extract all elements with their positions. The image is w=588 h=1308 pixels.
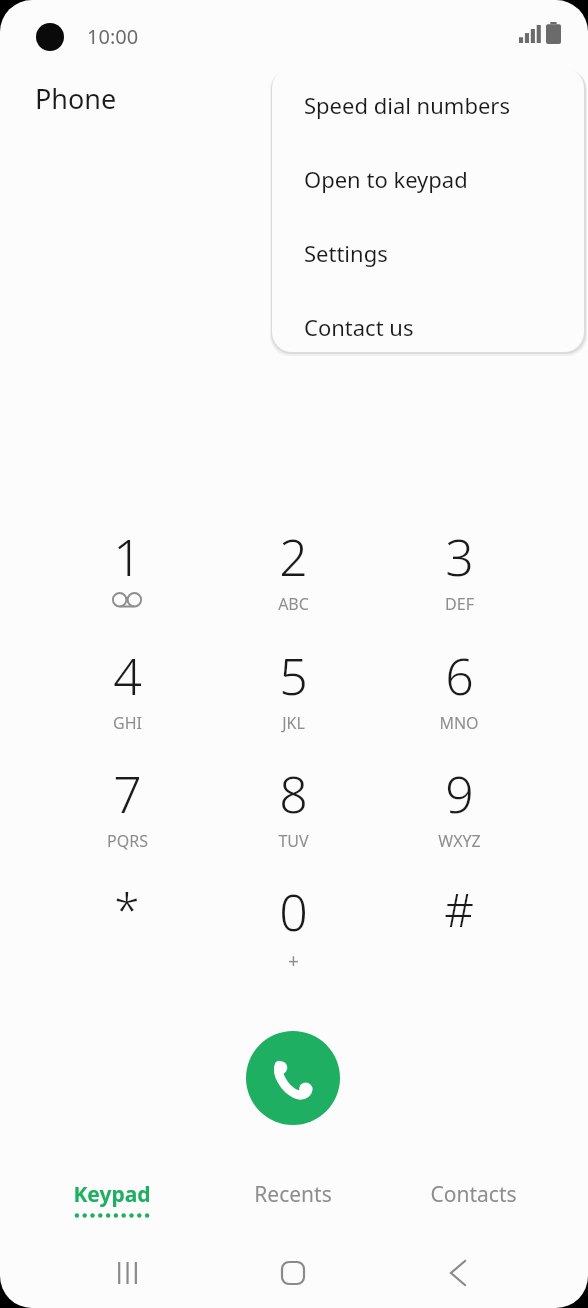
staticText: Contact us [304,312,414,342]
button[interactable]: 2 [218,512,368,624]
button[interactable]: Home [270,1250,316,1296]
staticText: Phone [35,80,117,117]
staticText: JKL [282,712,305,734]
staticText: DEF [445,593,474,615]
button[interactable]: Settings [272,216,584,290]
staticText: PQRS [107,830,148,852]
staticText: Speed dial numbers [304,90,510,120]
staticText: 5 [279,642,308,710]
button[interactable]: 4 [52,631,202,743]
staticText: Keypad [73,1180,151,1209]
staticText: WXYZ [438,830,481,852]
staticText: 7 [113,760,142,828]
button[interactable]: Call [246,1031,340,1125]
button[interactable]: # [384,867,534,979]
button[interactable]: Contact us [272,290,584,352]
button[interactable]: Open to keypad [272,142,584,216]
button[interactable]: Keypad [24,1166,200,1228]
staticText: 10:00 [87,23,139,50]
staticText: Open to keypad [304,164,468,194]
button[interactable]: Recent apps [104,1250,150,1296]
button[interactable]: Recents [205,1166,381,1228]
staticText: 2 [279,523,308,591]
staticText: 0 [279,878,308,946]
button[interactable]: 5 [218,631,368,743]
button[interactable]: Contacts [385,1166,561,1228]
staticText: Settings [304,238,388,268]
button[interactable]: 0 [218,867,368,979]
staticText: 9 [445,760,474,828]
staticText: Recents [254,1180,332,1209]
staticText: 4 [113,642,142,710]
button[interactable]: 6 [384,631,534,743]
button[interactable]: Speed dial numbers [272,68,584,142]
button[interactable]: 8 [218,749,368,861]
staticText: + [288,948,299,974]
button[interactable]: 1 [52,512,202,624]
staticText: GHI [113,712,142,734]
staticText: 1 [113,523,142,591]
staticText: Contacts [430,1180,517,1209]
button[interactable]: Back [435,1250,481,1296]
button[interactable]: 7 [52,749,202,861]
staticText: 6 [445,642,474,710]
staticText: 8 [279,760,308,828]
button[interactable]: * [52,867,202,979]
staticText: 3 [445,523,474,591]
other: Voicemail [111,593,143,609]
staticText: # [444,878,474,941]
button[interactable]: 9 [384,749,534,861]
staticText: TUV [278,830,309,852]
staticText: * [114,878,140,941]
staticText: ABC [278,593,309,615]
button[interactable]: 3 [384,512,534,624]
staticText: MNO [439,712,479,734]
